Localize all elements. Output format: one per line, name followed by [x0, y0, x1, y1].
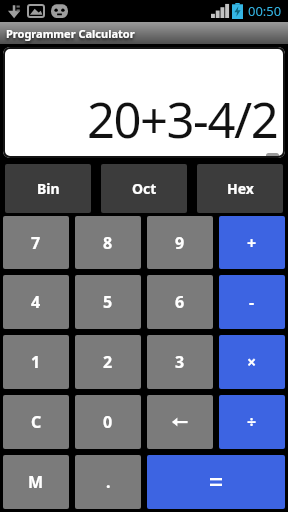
staticText: - — [249, 291, 255, 313]
staticText: 20+3-4/2 — [87, 86, 278, 153]
button[interactable]: ÷ — [219, 395, 285, 449]
staticText: Hex — [227, 179, 254, 198]
staticText: Oct — [132, 179, 157, 198]
button[interactable]: 9 — [147, 216, 213, 269]
button[interactable]: 3 — [147, 335, 213, 389]
staticText: 0 — [103, 411, 113, 433]
button[interactable] — [147, 455, 285, 509]
staticText: 00:50 — [248, 2, 282, 20]
staticText: 4 — [31, 291, 41, 313]
button[interactable]: 4 — [3, 275, 69, 329]
button[interactable]: 2 — [75, 335, 141, 389]
button[interactable]: 20+3-4/2 — [3, 47, 285, 158]
button[interactable]: 6 — [147, 275, 213, 329]
staticText: Bin — [37, 179, 60, 198]
staticText: 7 — [31, 232, 41, 254]
staticText: 1 — [31, 351, 41, 373]
button[interactable]: . — [75, 455, 141, 509]
button[interactable]: Hex — [197, 164, 283, 213]
button[interactable]: Oct — [101, 164, 187, 213]
staticText: × — [247, 351, 257, 373]
button[interactable]: M — [3, 455, 69, 509]
staticText: 8 — [103, 232, 113, 254]
button[interactable]: C — [3, 395, 69, 449]
button[interactable]: × — [219, 335, 285, 389]
staticText: + — [247, 232, 257, 254]
staticText: . — [106, 471, 111, 493]
button[interactable]: 0 — [75, 395, 141, 449]
button[interactable]: 1 — [3, 335, 69, 389]
staticText: 3 — [175, 351, 185, 373]
staticText: ÷ — [247, 411, 257, 433]
button[interactable]: 5 — [75, 275, 141, 329]
button[interactable] — [147, 395, 213, 449]
button[interactable]: + — [219, 216, 285, 269]
staticText: 5 — [103, 291, 113, 313]
staticText: C — [31, 411, 42, 433]
staticText: 2 — [103, 351, 113, 373]
staticText: Programmer Calculator — [6, 26, 135, 41]
button[interactable]: 7 — [3, 216, 69, 269]
button[interactable]: Bin — [5, 164, 91, 213]
button[interactable]: - — [219, 275, 285, 329]
staticText: M — [28, 471, 44, 493]
staticText: 6 — [175, 291, 185, 313]
staticText: 9 — [175, 232, 185, 254]
button[interactable]: 8 — [75, 216, 141, 269]
